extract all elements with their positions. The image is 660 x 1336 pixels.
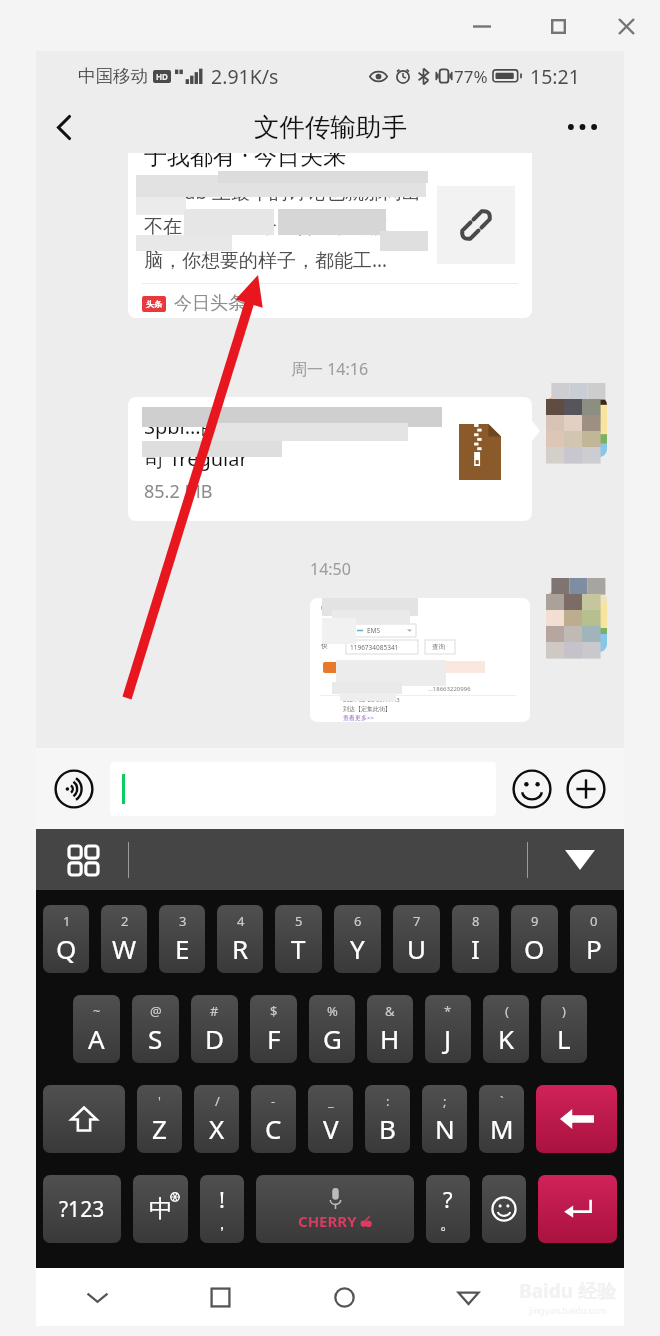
button[interactable]: More options	[558, 103, 606, 151]
button[interactable]: Hide keyboard	[556, 836, 604, 884]
button[interactable]: !	[200, 1175, 244, 1243]
button[interactable]: 中	[133, 1175, 188, 1243]
staticText: 文件传输助手	[254, 111, 407, 143]
button[interactable]: Back	[40, 103, 88, 151]
button[interactable]: @	[132, 995, 179, 1063]
button[interactable]: 6	[334, 905, 381, 973]
button[interactable]: ?	[426, 1175, 470, 1243]
button[interactable]: Backspace	[536, 1085, 617, 1153]
button[interactable]: $	[250, 995, 297, 1063]
staticText: K	[498, 1021, 515, 1056]
button[interactable]: Shift	[43, 1085, 125, 1153]
button[interactable]: )	[541, 995, 587, 1063]
staticText: I	[471, 931, 480, 966]
staticText: EMS	[367, 626, 381, 635]
staticText: 4	[237, 912, 245, 930]
button[interactable]: 于我都有 · 今日关来	[128, 153, 532, 318]
staticText: W	[112, 931, 137, 966]
staticText: Z	[152, 1111, 167, 1146]
staticText: V	[323, 1111, 339, 1146]
staticText: HD	[156, 71, 168, 82]
staticText: 14:50	[310, 558, 351, 580]
staticText: 9	[531, 912, 539, 930]
button[interactable]: Voice input	[52, 767, 96, 811]
button[interactable]: 1	[43, 905, 89, 973]
button[interactable]: Keyboard apps	[60, 837, 106, 883]
button[interactable]: Minimize	[458, 9, 506, 43]
button[interactable]: 8	[452, 905, 499, 973]
button[interactable]: Emoji	[510, 767, 554, 811]
staticText: 周一 14:16	[291, 358, 369, 380]
button[interactable]: ~	[73, 995, 120, 1063]
button[interactable]: 4	[217, 905, 263, 973]
staticText: D	[205, 1021, 224, 1056]
button[interactable]: 3	[159, 905, 205, 973]
staticText: _	[328, 1092, 334, 1110]
button[interactable]: Close	[602, 9, 650, 43]
staticText: $	[270, 1002, 278, 1020]
staticText: X	[209, 1111, 225, 1146]
button[interactable]: Enter	[538, 1175, 617, 1243]
staticText: ，	[214, 1214, 230, 1234]
button[interactable]: Maximize	[534, 9, 582, 43]
button[interactable]: Spbr...的主	[128, 397, 532, 521]
button[interactable]: Collapse keyboard	[36, 1268, 159, 1326]
button[interactable]: ;	[422, 1085, 467, 1153]
staticText: 印 ¥	[321, 604, 332, 612]
button[interactable]: 5	[275, 905, 322, 973]
button[interactable]: _	[308, 1085, 353, 1153]
staticText: ;	[443, 1092, 447, 1110]
staticText: Y	[350, 931, 365, 966]
staticText: 85.2 MB	[144, 479, 213, 504]
button[interactable]: '	[137, 1085, 182, 1153]
staticText: S	[148, 1021, 163, 1056]
button[interactable]: 0	[570, 905, 617, 973]
button[interactable]: CHERRY	[256, 1175, 414, 1243]
staticText: L	[557, 1021, 571, 1056]
staticText: F	[267, 1021, 281, 1056]
button[interactable]: 2	[101, 905, 147, 973]
button[interactable]: Recents	[159, 1268, 282, 1326]
staticText: J	[444, 1021, 452, 1056]
staticText: @	[150, 1002, 162, 1020]
button[interactable]: 7	[393, 905, 440, 973]
staticText: CHERRY	[298, 1211, 357, 1231]
staticText: ?123	[59, 1195, 105, 1224]
other: Emoji	[491, 1196, 517, 1222]
staticText: %	[327, 1002, 338, 1020]
button[interactable]: Back	[406, 1268, 530, 1326]
staticText: GitHub 上最牛的讨论也就那同出	[144, 179, 422, 205]
staticText: *	[444, 1002, 452, 1020]
staticText: /	[215, 1092, 220, 1110]
button[interactable]: `	[479, 1085, 524, 1153]
staticText: 查看更多>>	[343, 714, 374, 722]
button[interactable]: #	[191, 995, 238, 1063]
staticText: 77%	[454, 65, 488, 88]
staticText: G	[323, 1021, 342, 1056]
other: Enter	[563, 1198, 593, 1220]
button[interactable]: %	[309, 995, 355, 1063]
button[interactable]: :	[365, 1085, 410, 1153]
button[interactable]: (	[483, 995, 529, 1063]
button[interactable]: -	[251, 1085, 296, 1153]
staticText: jingyan.baidu.com	[529, 1304, 607, 1316]
staticText: 15:21	[530, 63, 580, 90]
staticText: P	[586, 931, 602, 966]
staticText: 8	[472, 912, 480, 930]
button[interactable]: 印 ¥	[310, 598, 530, 722]
button[interactable]: More actions	[564, 767, 608, 811]
staticText: ~	[93, 1002, 101, 1020]
button[interactable]: /	[194, 1085, 239, 1153]
button[interactable]: 9	[511, 905, 558, 973]
staticText: H	[380, 1021, 400, 1056]
staticText: 。	[440, 1214, 456, 1234]
staticText: 1	[63, 912, 71, 930]
button[interactable]: *	[425, 995, 471, 1063]
button[interactable]	[110, 762, 496, 816]
button[interactable]: Home	[282, 1268, 406, 1326]
button[interactable]: &	[367, 995, 413, 1063]
staticText: O	[524, 931, 545, 966]
staticText: E	[175, 931, 190, 966]
button[interactable]: Emoji	[482, 1175, 526, 1243]
button[interactable]: ?123	[43, 1175, 121, 1243]
